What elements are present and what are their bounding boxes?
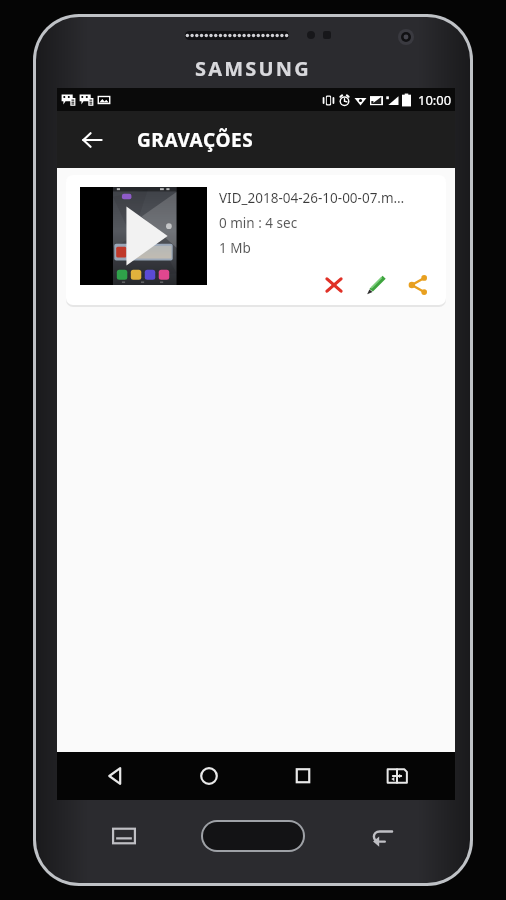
button[interactable]: Share xyxy=(404,271,432,299)
button[interactable]: Back xyxy=(71,119,113,161)
button[interactable]: Delete xyxy=(320,271,348,299)
staticText: SAMSUNG xyxy=(195,55,311,82)
button[interactable]: Home xyxy=(173,752,245,800)
button[interactable]: Back xyxy=(79,752,151,800)
button[interactable]: Play video xyxy=(66,175,446,305)
staticText: VID_2018-04-26-10-00-07.m… xyxy=(219,189,405,207)
button[interactable]: Screenshot xyxy=(361,752,433,800)
button[interactable]: Edit xyxy=(362,271,390,299)
staticText: 1 Mb xyxy=(219,239,251,257)
button[interactable]: Recents xyxy=(267,752,339,800)
staticText: 10:00 xyxy=(418,91,452,109)
staticText: 0 min : 4 sec xyxy=(219,214,298,232)
staticText: GRAVAÇÕES xyxy=(137,127,254,153)
button[interactable]: Play video xyxy=(80,187,207,285)
